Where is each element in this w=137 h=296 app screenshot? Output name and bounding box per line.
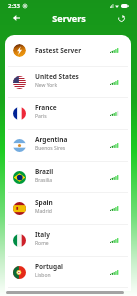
button[interactable]: Fastest Server xyxy=(5,35,131,66)
button[interactable]: Refresh xyxy=(114,12,128,24)
staticText: Lisbon xyxy=(35,272,51,279)
staticText: Paris xyxy=(35,113,47,120)
staticText: Brazil xyxy=(35,167,54,176)
staticText: Italy xyxy=(35,230,50,239)
button[interactable]: Italy xyxy=(5,225,131,256)
staticText: United States xyxy=(35,72,79,81)
staticText: Portugal xyxy=(35,262,63,271)
staticText: Spain xyxy=(35,198,53,207)
button[interactable]: Brazil xyxy=(5,162,131,192)
button[interactable]: Argentina xyxy=(5,130,131,161)
staticText: Servers xyxy=(52,12,86,24)
staticText: New York xyxy=(35,82,58,89)
button[interactable]: France xyxy=(5,98,131,129)
staticText: France xyxy=(35,103,57,112)
button[interactable]: United States xyxy=(5,67,131,97)
staticText: Brasilia xyxy=(35,177,53,184)
staticText: Madrid xyxy=(35,208,52,215)
button[interactable]: Portugal xyxy=(5,257,131,287)
button[interactable]: Spain xyxy=(5,193,131,224)
staticText: 2:33 xyxy=(8,2,20,10)
staticText: Rome xyxy=(35,240,49,247)
staticText: Argentina xyxy=(35,135,68,144)
button[interactable]: Back xyxy=(9,12,23,24)
staticText: Buenos Sires xyxy=(35,145,66,152)
staticText: Fastest Server xyxy=(35,46,82,55)
